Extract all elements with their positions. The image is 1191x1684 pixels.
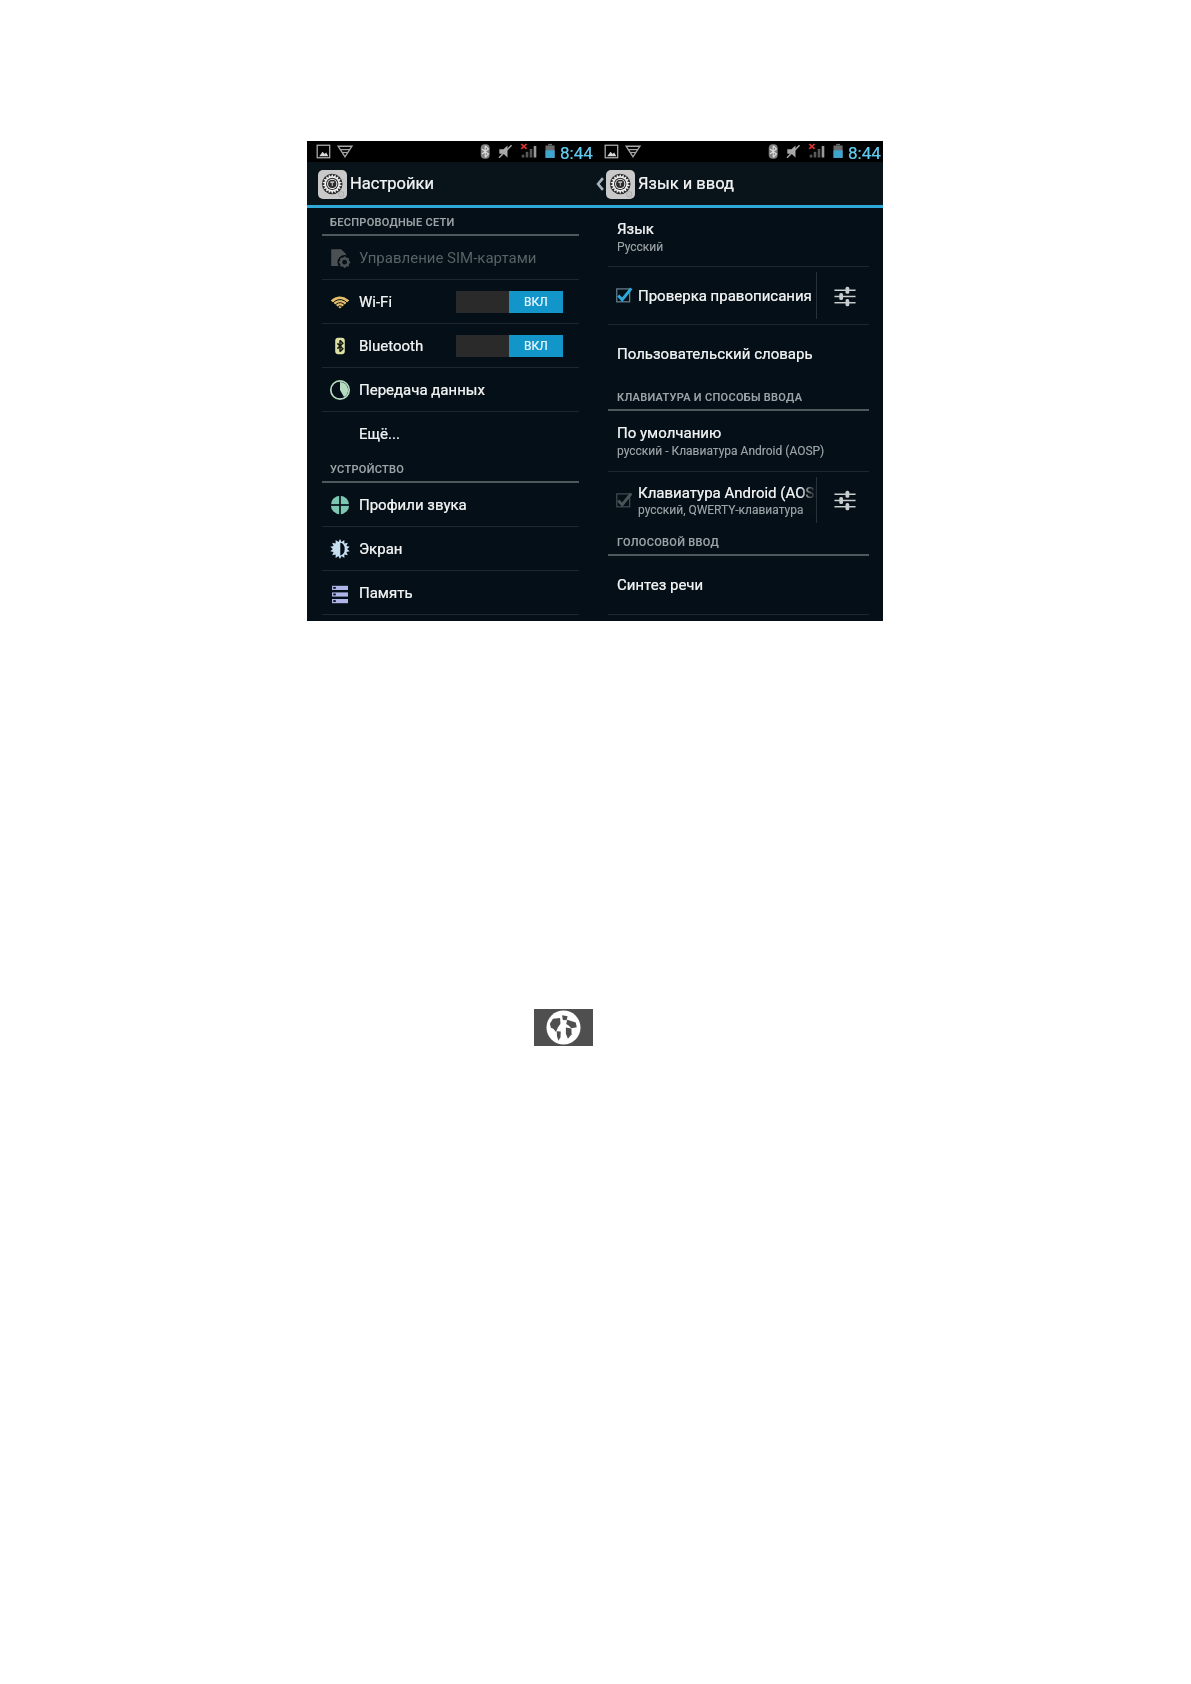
staticText: УСТРОЙСТВО	[330, 463, 405, 476]
button[interactable]: Язык	[595, 208, 883, 266]
staticText: русский, QWERTY-клавиатура	[638, 503, 804, 517]
staticText: 8:44	[560, 143, 593, 163]
staticText: ГОЛОСОВОЙ ВВОД	[617, 536, 720, 549]
staticText: Память	[359, 584, 413, 602]
staticText: Проверка правописания	[638, 287, 812, 305]
button[interactable]: ВКЛ	[456, 335, 563, 357]
staticText: Синтез речи	[617, 576, 704, 594]
button[interactable]: Экран	[307, 527, 595, 570]
staticText: Ещё...	[359, 425, 400, 443]
staticText: русский - Клавиатура Android (AOSP)	[617, 444, 825, 458]
button[interactable]: Клавиатура Android (AOSP)	[595, 472, 816, 528]
staticText: ВКЛ	[524, 295, 548, 309]
staticText: Профили звука	[359, 496, 467, 514]
staticText: Язык и ввод	[638, 174, 734, 193]
button[interactable]: Проверка правописания	[595, 267, 816, 324]
button[interactable]: Settings	[817, 267, 883, 324]
button[interactable]: Wi-Fi	[307, 280, 595, 323]
staticText: По умолчанию	[617, 424, 722, 442]
staticText: Экран	[359, 540, 403, 558]
staticText: Управление SIM-картами	[359, 249, 537, 267]
staticText: Bluetooth	[359, 337, 424, 355]
staticText: Wi-Fi	[359, 293, 393, 311]
button[interactable]: Bluetooth	[307, 324, 595, 367]
staticText: Пользовательский словарь	[617, 345, 813, 363]
button[interactable]: Передача данных	[307, 368, 595, 411]
staticText: Язык	[617, 220, 654, 238]
button[interactable]: Память	[307, 571, 595, 614]
staticText: 8:44	[848, 143, 881, 163]
staticText: Передача данных	[359, 381, 485, 399]
button[interactable]: ВКЛ	[456, 291, 563, 313]
button[interactable]: Управление SIM-картами	[307, 236, 595, 279]
button[interactable]: Ещё...	[307, 412, 595, 455]
button[interactable]: По умолчанию	[595, 411, 883, 471]
staticText: Настройки	[350, 174, 434, 193]
staticText: Русский	[617, 240, 664, 254]
button[interactable]: Settings	[817, 472, 883, 528]
button[interactable]: Синтез речи	[595, 556, 883, 614]
staticText: Клавиатура Android (AOSP)	[638, 484, 816, 502]
button[interactable]: Пользовательский словарь	[595, 325, 883, 383]
staticText: КЛАВИАТУРА И СПОСОБЫ ВВОДА	[617, 391, 803, 404]
staticText: БЕСПРОВОДНЫЕ СЕТИ	[330, 216, 455, 229]
button[interactable]: Профили звука	[307, 483, 595, 526]
staticText: ВКЛ	[524, 339, 548, 353]
